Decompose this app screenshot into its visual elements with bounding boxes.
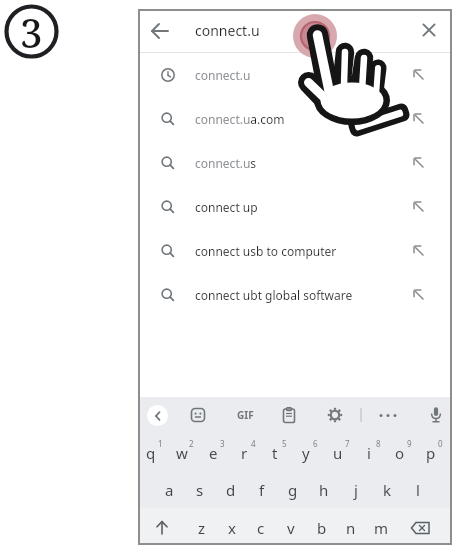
staticText: 1	[158, 438, 163, 449]
staticText: g	[288, 480, 298, 500]
button[interactable]: h	[310, 479, 338, 501]
staticText: connect usb to computer	[195, 243, 337, 259]
staticText: s	[196, 480, 204, 500]
button[interactable]: v	[277, 517, 305, 539]
staticText: 9	[407, 438, 412, 449]
button[interactable]: connect.u	[138, 53, 452, 97]
button[interactable]: p	[417, 442, 445, 464]
button[interactable]	[146, 17, 174, 45]
staticText: e	[209, 443, 218, 463]
button[interactable]: connect ubt global software	[138, 273, 452, 317]
staticText: 0	[438, 438, 443, 449]
staticText: z	[198, 518, 206, 538]
staticText: u	[333, 443, 343, 463]
button[interactable]: f	[248, 479, 276, 501]
button[interactable]: n	[337, 517, 365, 539]
button[interactable]: g	[279, 479, 307, 501]
button[interactable]: z	[188, 517, 216, 539]
staticText: 3	[20, 5, 43, 59]
staticText: connect.u	[195, 21, 260, 40]
button[interactable]	[376, 406, 400, 424]
button[interactable]: r	[230, 442, 258, 464]
staticText: 4	[251, 438, 256, 449]
button[interactable]: l	[404, 479, 432, 501]
staticText: connect up	[195, 199, 258, 215]
staticText: GIF	[237, 408, 254, 422]
staticText: l	[416, 480, 420, 500]
button[interactable]: x	[218, 517, 246, 539]
staticText: v	[287, 518, 295, 538]
staticText: 3	[220, 438, 225, 449]
button[interactable]: a	[155, 479, 183, 501]
staticText: m	[374, 518, 389, 538]
staticText: 5	[282, 438, 287, 449]
staticText: i	[367, 443, 371, 463]
button[interactable]	[147, 405, 168, 426]
staticText: y	[302, 443, 310, 463]
button[interactable]: GIF	[230, 406, 260, 424]
button[interactable]: o	[386, 442, 414, 464]
staticText: k	[383, 480, 392, 500]
staticText: 2	[189, 438, 194, 449]
staticText: q	[146, 443, 156, 463]
staticText: r	[241, 443, 248, 463]
staticText: n	[346, 518, 356, 538]
button[interactable]: t	[261, 442, 289, 464]
button[interactable]	[415, 16, 443, 44]
button[interactable]: e	[199, 442, 227, 464]
staticText: d	[226, 480, 236, 500]
staticText: b	[317, 518, 327, 538]
button[interactable]: d	[217, 479, 245, 501]
button[interactable]: u	[324, 442, 352, 464]
button[interactable]: connect.ua.com	[138, 97, 452, 141]
button[interactable]: b	[308, 517, 336, 539]
button[interactable]: w	[168, 442, 196, 464]
staticText: p	[426, 443, 436, 463]
staticText: w	[176, 443, 188, 463]
staticText: a	[165, 480, 174, 500]
button[interactable]: j	[342, 479, 370, 501]
staticText: 8	[376, 438, 381, 449]
staticText: t	[272, 443, 278, 463]
button[interactable]: connect.us	[138, 141, 452, 185]
staticText: f	[259, 480, 265, 500]
button[interactable]	[280, 406, 298, 424]
staticText: x	[228, 518, 236, 538]
button[interactable]: y	[292, 442, 320, 464]
staticText: 7	[345, 438, 350, 449]
button[interactable]: connect up	[138, 185, 452, 229]
staticText: connect.ua.com	[195, 111, 285, 127]
button[interactable]: i	[355, 442, 383, 464]
button[interactable]	[150, 516, 174, 540]
staticText: j	[354, 480, 358, 500]
staticText: connect.us	[195, 155, 257, 171]
button[interactable]: s	[186, 479, 214, 501]
button[interactable]: c	[247, 517, 275, 539]
button[interactable]	[426, 405, 446, 425]
button[interactable]: connect usb to computer	[138, 229, 452, 273]
staticText: 6	[313, 438, 318, 449]
staticText: c	[257, 518, 265, 538]
button[interactable]: m	[367, 517, 395, 539]
button[interactable]	[408, 516, 434, 540]
staticText: connect.u	[195, 67, 251, 83]
button[interactable]: k	[373, 479, 401, 501]
staticText: connect ubt global software	[195, 287, 353, 303]
button[interactable]	[326, 406, 344, 424]
staticText: h	[319, 480, 329, 500]
button[interactable]	[189, 406, 207, 424]
staticText: o	[395, 443, 405, 463]
button[interactable]: q	[137, 442, 165, 464]
